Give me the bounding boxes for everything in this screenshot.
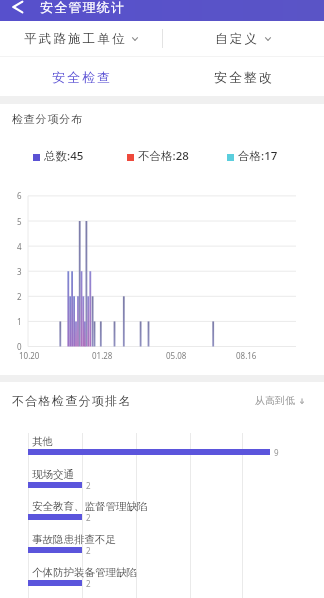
staticText: 2 (86, 512, 91, 523)
staticText: 5 (17, 216, 22, 227)
staticText: 2 (86, 578, 91, 589)
staticText: 0 (17, 341, 22, 352)
staticText: 1 (17, 316, 22, 327)
staticText: 08.16 (236, 350, 257, 361)
staticText: 安全整改 (213, 69, 273, 85)
staticText: 事故隐患排查不足 (32, 533, 116, 546)
staticText: 01.28 (92, 350, 113, 361)
staticText: 不合格:28 (138, 148, 189, 164)
staticText: 2 (86, 545, 91, 556)
staticText: 9 (274, 447, 279, 458)
button[interactable]: 安全检查 (0, 57, 162, 96)
button[interactable]: 平武路施工单位 (0, 21, 162, 56)
button[interactable]: 从高到低 (255, 394, 306, 407)
staticText: 其他 (32, 435, 53, 448)
staticText: 2 (86, 480, 91, 491)
staticText: 10.20 (19, 350, 40, 361)
staticText: 自定义 (215, 31, 260, 47)
staticText: 安全管理统计 (40, 0, 126, 15)
button[interactable]: 其他 (0, 433, 324, 465)
staticText: 从高到低 (255, 394, 295, 407)
staticText: 2 (17, 291, 22, 302)
staticText: 4 (17, 241, 22, 252)
button[interactable]: 个体防护装备管理缺陷 (0, 564, 324, 596)
staticText: 总数:45 (44, 148, 84, 164)
button[interactable]: 安全教育、监督管理缺陷 (0, 498, 324, 530)
staticText: 6 (17, 190, 22, 201)
button[interactable]: 现场交通 (0, 466, 324, 498)
button[interactable]: 自定义 (162, 21, 324, 56)
staticText: 现场交通 (32, 468, 74, 481)
staticText: 平武路施工单位 (24, 31, 127, 47)
staticText: 不合格检查分项排名 (12, 393, 132, 408)
button[interactable]: Back (8, 0, 26, 16)
staticText: 合格:17 (238, 148, 278, 164)
staticText: 检查分项分布 (12, 112, 83, 126)
staticText: 3 (17, 266, 22, 277)
staticText: 安全检查 (51, 69, 111, 85)
button[interactable]: 安全整改 (162, 57, 324, 96)
button[interactable]: 事故隐患排查不足 (0, 531, 324, 563)
staticText: 05.08 (166, 350, 187, 361)
staticText: 个体防护装备管理缺陷 (32, 566, 137, 579)
staticText: 安全教育、监督管理缺陷 (32, 500, 148, 513)
